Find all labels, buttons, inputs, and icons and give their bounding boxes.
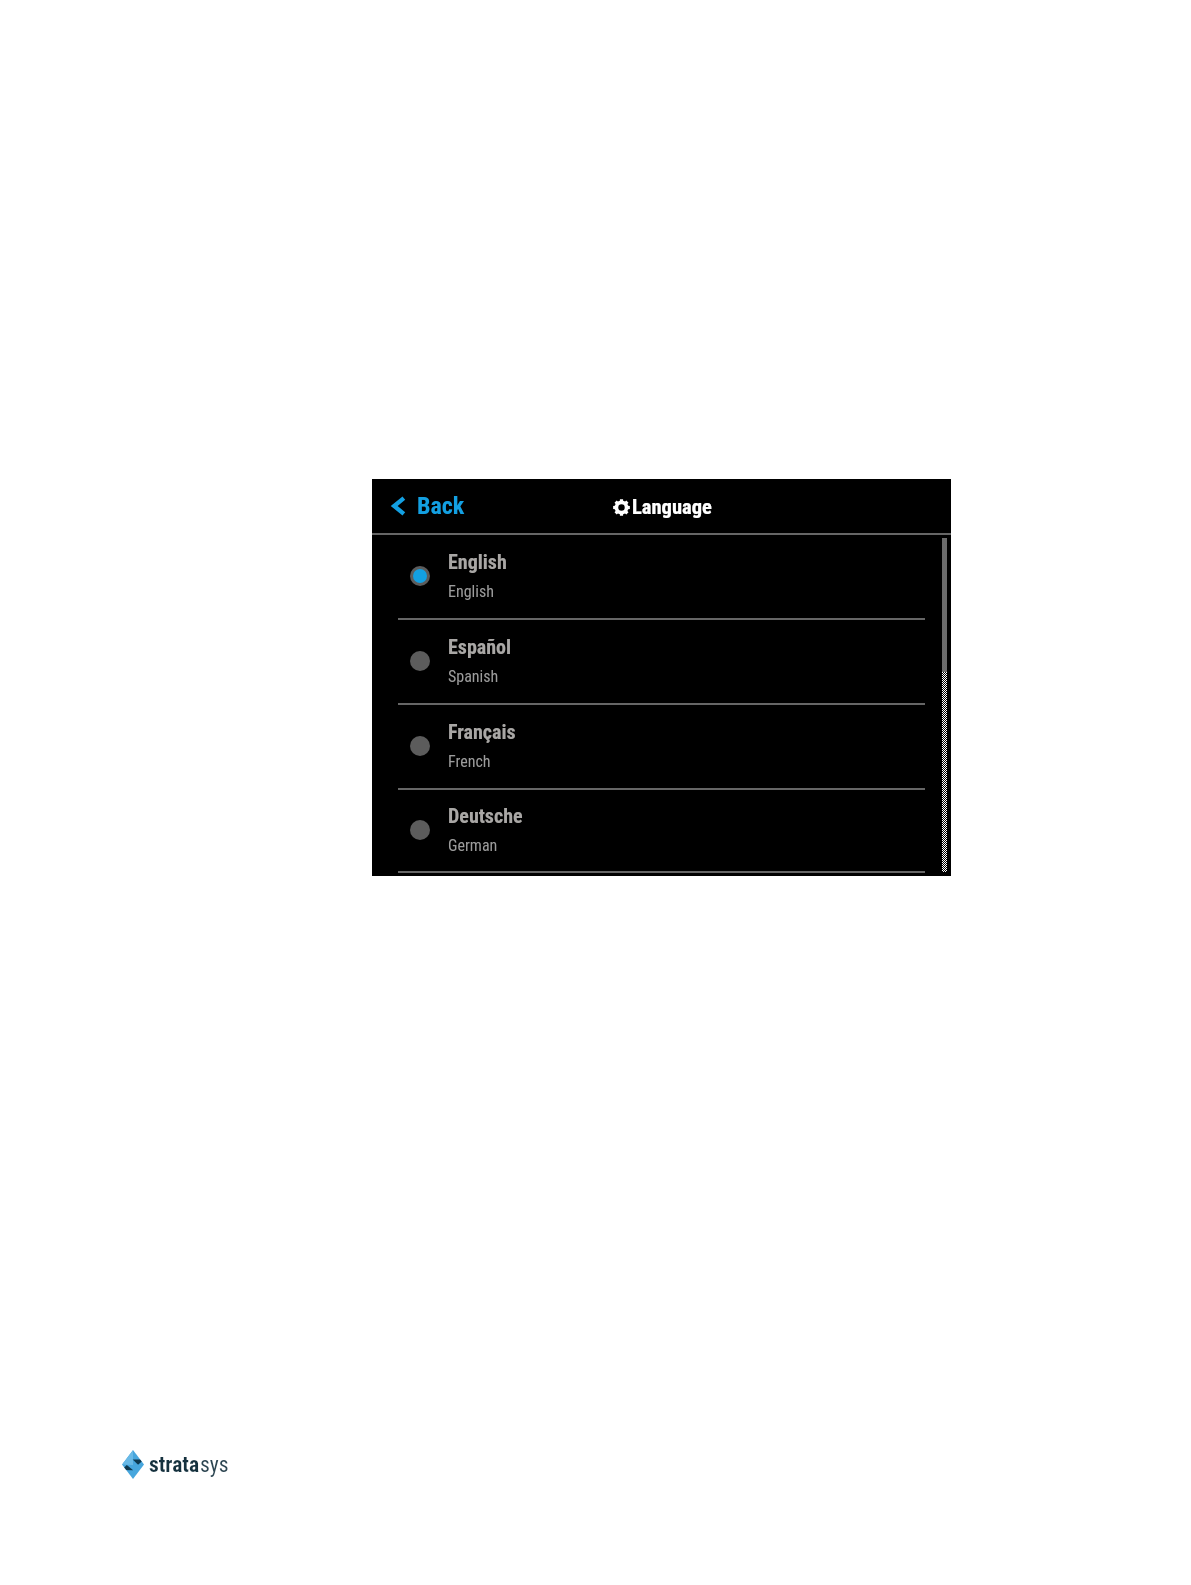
staticText: English [448, 550, 507, 573]
staticText: English [448, 582, 494, 601]
staticText: Back [417, 492, 465, 520]
staticText: German [448, 836, 498, 855]
staticText: sys [200, 1452, 229, 1477]
staticText: Français [448, 720, 516, 743]
staticText: Español [448, 635, 512, 658]
button[interactable]: Français [372, 703, 951, 790]
staticText: Language [632, 495, 712, 519]
button[interactable]: Back [384, 488, 477, 524]
staticText: Spanish [448, 667, 499, 686]
staticText: Deutsche [448, 804, 523, 827]
button[interactable]: English [372, 532, 951, 621]
staticText: French [448, 752, 491, 771]
staticText: strata [149, 1452, 200, 1477]
button[interactable]: Deutsche [372, 787, 951, 874]
button[interactable]: Español [372, 618, 951, 705]
